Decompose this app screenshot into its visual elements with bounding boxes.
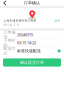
staticText: 03-15 14:22 (17, 40, 36, 45)
button[interactable]: Back (1, 0, 9, 6)
staticText: 标准快递配送 (17, 48, 41, 53)
staticText: 下单时间 (3, 38, 15, 48)
button[interactable]: 下单时间 (0, 39, 64, 47)
staticText: 订单编号 (3, 30, 15, 40)
button[interactable]: 修改 (54, 19, 60, 22)
staticText: 上海市浦东新区张江高科 (3, 19, 36, 22)
staticText: 博云路 2 号 (3, 23, 19, 26)
staticText: 订单确认 (24, 0, 40, 5)
button[interactable]: 订单编号 (0, 31, 64, 39)
staticText: 确认提交订单 (20, 60, 44, 65)
staticText: 修改 (54, 19, 60, 22)
staticText: 配送方式 (3, 46, 15, 56)
staticText: 20240315 (17, 32, 33, 37)
button[interactable]: 确认提交订单 (3, 58, 61, 67)
button[interactable]: 配送方式 (0, 47, 64, 55)
